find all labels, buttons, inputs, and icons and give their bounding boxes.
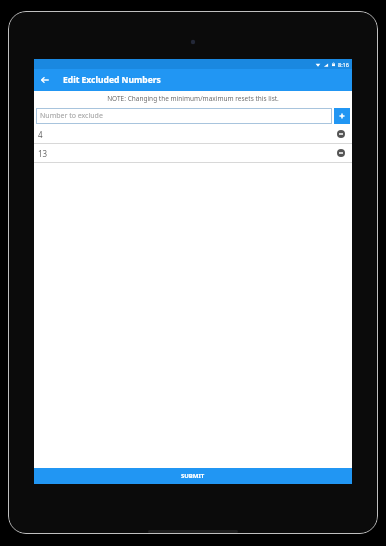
staticText: 4	[38, 129, 43, 140]
button[interactable]: Remove 13	[334, 146, 348, 160]
button[interactable]: Add number	[334, 108, 350, 124]
staticText: 8:16	[338, 61, 349, 68]
button[interactable]: 13	[34, 144, 352, 162]
button[interactable]: Number to exclude	[36, 108, 332, 124]
staticText: 13	[38, 148, 48, 159]
staticText: NOTE: Changing the minimum/maximum reset…	[107, 94, 279, 103]
button[interactable]: 4	[34, 125, 352, 143]
button[interactable]: Remove 4	[334, 127, 348, 141]
staticText: Edit Excluded Numbers	[63, 74, 161, 86]
button[interactable]: Back	[34, 69, 56, 91]
button[interactable]: SUBMIT	[34, 468, 352, 484]
staticText: SUBMIT	[181, 472, 205, 480]
staticText: Number to exclude	[40, 111, 103, 121]
